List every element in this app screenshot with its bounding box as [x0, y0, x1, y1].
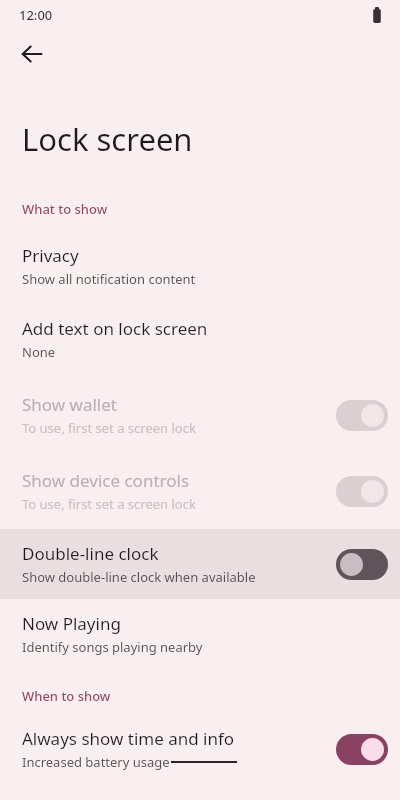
staticText: Always show time and info — [22, 727, 235, 750]
staticText: To use, first set a screen lock — [22, 419, 196, 437]
staticText: Show wallet — [22, 393, 117, 416]
button[interactable]: Double-line clock — [0, 529, 400, 599]
button[interactable]: Back — [10, 32, 54, 76]
staticText: Increased battery usage — [22, 753, 170, 771]
staticText: To use, first set a screen lock — [22, 495, 196, 513]
staticText: Identify songs playing nearby — [22, 638, 203, 656]
button[interactable]: Privacy — [0, 231, 400, 301]
staticText: Show double-line clock when available — [22, 568, 256, 586]
staticText: Show all notification content — [22, 270, 196, 288]
button[interactable]: Now Playing — [0, 599, 400, 669]
staticText: Lock screen — [22, 118, 193, 160]
staticText: Double-line clock — [22, 542, 159, 565]
staticText: Add text on lock screen — [22, 317, 208, 340]
button[interactable]: Show wallet — [0, 377, 400, 453]
staticText: None — [22, 343, 56, 361]
staticText: Show device controls — [22, 469, 190, 492]
button[interactable]: Always show time and info — [0, 719, 400, 779]
staticText: Now Playing — [22, 612, 121, 635]
staticText: When to show — [22, 687, 111, 705]
staticText: What to show — [22, 200, 108, 218]
staticText: Privacy — [22, 244, 79, 267]
button[interactable]: Add text on lock screen — [0, 301, 400, 377]
staticText: 12:00 — [19, 6, 53, 24]
button[interactable]: Show device controls — [0, 453, 400, 529]
